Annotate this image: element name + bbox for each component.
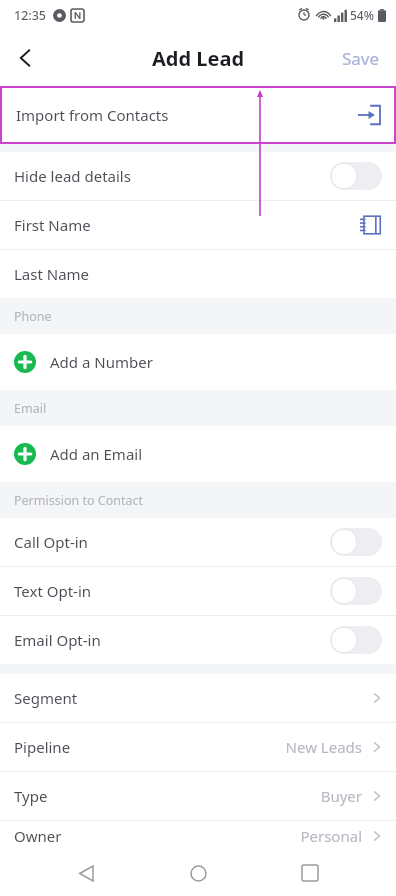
- button[interactable]: Home: [172, 850, 224, 896]
- staticText: Import from Contacts: [16, 105, 169, 125]
- other: Import: [358, 104, 380, 126]
- staticText: Owner: [14, 826, 62, 846]
- button[interactable]: Import from Contacts: [0, 86, 396, 144]
- staticText: Call Opt-in: [14, 532, 88, 552]
- staticText: Add an Email: [50, 444, 143, 464]
- staticText: Add a Number: [50, 352, 153, 372]
- button[interactable]: Recent apps: [284, 850, 336, 896]
- staticText: Personal: [300, 826, 362, 846]
- staticText: New Leads: [285, 737, 362, 757]
- button[interactable]: Hide lead details: [0, 152, 396, 200]
- button[interactable]: Back: [60, 850, 112, 896]
- button[interactable]: Save: [326, 33, 396, 84]
- button[interactable]: Call Opt-in: [0, 518, 396, 566]
- staticText: Last Name: [14, 264, 90, 284]
- button[interactable]: Email Opt-in: [0, 616, 396, 664]
- staticText: 12:35: [14, 7, 47, 24]
- staticText: Permission to Contact: [14, 492, 143, 509]
- button[interactable]: Add an Email: [0, 426, 396, 482]
- staticText: First Name: [14, 215, 91, 235]
- button[interactable]: First Name: [0, 201, 396, 249]
- staticText: Email: [14, 400, 47, 417]
- staticText: Buyer: [320, 786, 362, 806]
- button[interactable]: Last Name: [0, 250, 396, 298]
- button[interactable]: Owner: [0, 821, 396, 850]
- staticText: Add Lead: [152, 45, 245, 72]
- other: Contacts: [360, 214, 382, 236]
- button[interactable]: Text Opt-in: [0, 567, 396, 615]
- staticText: Save: [342, 47, 380, 70]
- button[interactable]: Pipeline: [0, 723, 396, 771]
- staticText: Segment: [14, 688, 78, 708]
- button[interactable]: Segment: [0, 674, 396, 722]
- button[interactable]: Type: [0, 772, 396, 820]
- button[interactable]: Add a Number: [0, 334, 396, 390]
- button[interactable]: Back: [0, 32, 52, 84]
- staticText: Hide lead details: [14, 166, 131, 186]
- staticText: Text Opt-in: [14, 581, 92, 601]
- staticText: Phone: [14, 308, 52, 325]
- staticText: 54%: [350, 7, 374, 23]
- staticText: Pipeline: [14, 737, 71, 757]
- staticText: Email Opt-in: [14, 630, 101, 650]
- staticText: Type: [14, 786, 48, 806]
